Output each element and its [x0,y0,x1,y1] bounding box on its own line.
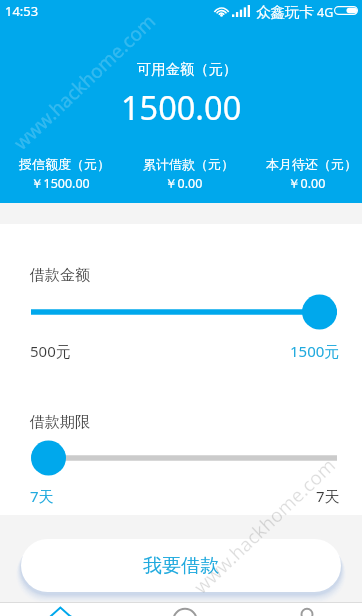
staticText: 14:53 [5,2,39,20]
staticText: 4G [317,4,334,21]
staticText: 授信额度（元） [19,156,110,172]
staticText: 本月待还（元） [266,156,357,172]
staticText: 借款期限 [30,413,90,432]
staticText: ￥0.00 [165,175,203,192]
button[interactable]: 借款 [120,602,241,616]
staticText: 众鑫玩卡 [256,3,314,21]
staticText: www.hackhome.com [188,452,341,599]
staticText: 7天 [316,486,340,506]
staticText: www.hackhome.com [8,8,161,155]
staticText: 7天 [30,486,54,506]
staticText: 借款金额 [30,266,90,285]
staticText: 500元 [30,341,71,361]
button[interactable]: 首页 [0,602,120,616]
button[interactable]: 我要借款 [21,539,341,592]
staticText: ￥0.00 [288,175,326,192]
staticText: 可用金额（元） [137,60,238,78]
staticText: 我要借款 [143,554,219,578]
button[interactable]: Slider [31,438,337,478]
staticText: 1500.00 [121,85,242,129]
staticText: 累计借款（元） [143,156,234,172]
staticText: ￥1500.00 [31,175,90,192]
staticText: 1500元 [290,341,340,361]
button[interactable]: Slider [31,292,337,332]
button[interactable]: 我的 [241,602,362,616]
